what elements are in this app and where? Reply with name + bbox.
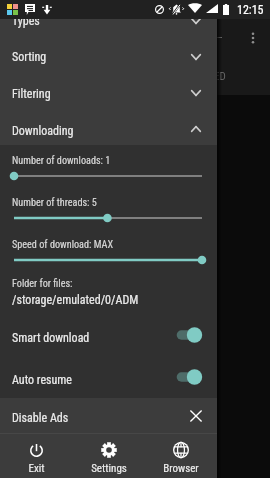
button[interactable]: More options [245,30,261,46]
button[interactable]: Downloading [0,111,217,147]
button[interactable]: Types [0,3,217,39]
staticText: Speed of download: MAX [12,239,114,251]
staticText: /storage/emulated/0/ADM [12,293,139,307]
staticText: 12:15 [237,3,264,17]
button[interactable]: Exit [0,434,73,478]
staticText: Number of downloads: 1 [12,155,111,167]
staticText: Disable Ads [12,411,69,425]
button[interactable]: Auto resume [0,364,217,392]
staticText: Auto resume [12,373,72,387]
staticText: Settings [91,462,127,475]
button[interactable] [0,209,217,227]
button[interactable]: Settings [73,434,145,478]
staticText: Folder for files: [12,278,73,290]
staticText: Exit [28,462,45,475]
other: Close [189,409,203,423]
staticText: Types [12,14,40,28]
button[interactable]: Disable Ads [0,398,217,433]
button[interactable]: Smart download [0,322,217,350]
button[interactable]: Filtering [0,75,217,111]
staticText: Sorting [12,50,47,64]
staticText: Smart download [12,331,90,345]
button[interactable] [0,167,217,185]
button[interactable] [0,251,217,269]
staticText: ED [214,70,226,83]
staticText: Number of threads: 5 [12,197,97,209]
button[interactable]: Sorting [0,39,217,75]
staticText: Filtering [12,87,51,101]
button[interactable]: Browser [145,434,217,478]
button[interactable]: Folder for files: [0,270,217,308]
staticText: Downloading [12,124,74,138]
staticText: Browser [163,462,199,475]
